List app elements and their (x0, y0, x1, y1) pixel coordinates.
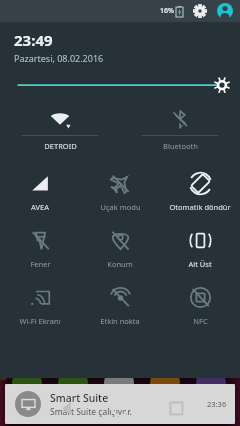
button[interactable]: Etkin nokta (80, 278, 160, 335)
staticText: 16% (160, 6, 174, 16)
staticText: Alt Üst (188, 259, 212, 269)
button[interactable]: Bluetooth (120, 104, 240, 158)
staticText: Fener (30, 259, 51, 269)
button[interactable]: Smart Suite (5, 384, 235, 424)
button[interactable]: Settings (192, 3, 208, 19)
staticText: Etkin nokta (100, 316, 140, 326)
staticText: Uçak modu (100, 202, 141, 212)
button[interactable]: Uçak modu (80, 164, 160, 221)
staticText: NFC (193, 316, 208, 326)
button[interactable]: Brightness (0, 64, 240, 98)
button[interactable]: Otomatik döndür (160, 164, 240, 221)
button[interactable]: Fener (0, 221, 80, 278)
staticText: AVEA (31, 202, 49, 212)
staticText: Konum (107, 259, 133, 269)
staticText: Otomatik döndür (169, 202, 231, 212)
button[interactable]: Wi-Fi Ekranı (0, 278, 80, 335)
button[interactable]: DETROID (0, 104, 120, 158)
staticText: Smart Suite (50, 391, 109, 405)
staticText: DETROID (44, 141, 77, 151)
staticText: Pazartesi, 08.02.2016 (14, 52, 104, 64)
button[interactable]: Konum (80, 221, 160, 278)
staticText: 23:49 (14, 30, 53, 50)
button[interactable]: User profile (216, 2, 234, 20)
staticText: 23:36 (207, 399, 227, 409)
button[interactable]: AVEA (0, 164, 80, 221)
staticText: Wi-Fi Ekranı (19, 316, 61, 326)
button[interactable]: Alt Üst (160, 221, 240, 278)
staticText: Smart Suite çalışıyor. (50, 406, 132, 418)
button[interactable]: NFC (160, 278, 240, 335)
staticText: Bluetooth (163, 141, 198, 151)
